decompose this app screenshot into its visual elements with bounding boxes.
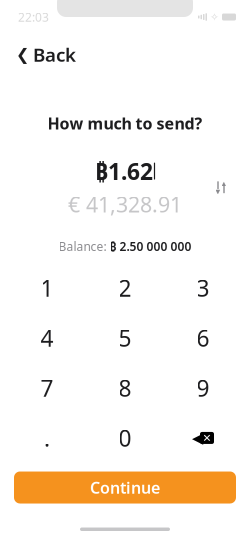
staticText: ❮ — [16, 45, 29, 63]
button[interactable]: 3 — [164, 271, 242, 305]
staticText: 6 — [196, 323, 209, 353]
button[interactable]: ❮ — [0, 34, 92, 75]
staticText: Back — [33, 42, 76, 67]
staticText: How much to send? — [47, 113, 202, 134]
staticText: € 41,328.91 — [68, 190, 182, 218]
staticText: 8 — [118, 373, 131, 403]
staticText: 22:03 — [18, 9, 49, 25]
button[interactable]: 2 — [86, 271, 164, 305]
staticText: ₿1.62 — [95, 156, 153, 186]
button[interactable]: 1 — [8, 271, 86, 305]
staticText: Balance: — [58, 238, 106, 254]
button[interactable]: Switch currency — [206, 172, 236, 202]
staticText: ◀ — [192, 430, 203, 446]
staticText: 7 — [40, 373, 53, 403]
staticText: ₿ 2.50 000 000 — [109, 238, 191, 254]
button[interactable]: 9 — [164, 371, 242, 405]
button[interactable]: 0 — [86, 421, 164, 455]
button[interactable]: 5 — [86, 321, 164, 355]
button[interactable]: 6 — [164, 321, 242, 355]
staticText: ✧ — [210, 11, 219, 23]
staticText: . — [44, 423, 50, 453]
staticText: ✕ — [202, 432, 211, 444]
staticText: ▾ — [215, 186, 220, 197]
staticText: 9 — [196, 373, 209, 403]
staticText: Continue — [90, 477, 160, 498]
button[interactable]: Continue — [14, 471, 236, 503]
staticText: 0 — [118, 423, 131, 453]
staticText: 4 — [40, 323, 53, 353]
button[interactable]: 4 — [8, 321, 86, 355]
staticText: 1 — [40, 273, 53, 303]
button[interactable]: 8 — [86, 371, 164, 405]
button[interactable]: . — [8, 421, 86, 455]
staticText: 2 — [118, 273, 131, 303]
staticText: 3 — [196, 273, 209, 303]
button[interactable]: 7 — [8, 371, 86, 405]
staticText: ▴ — [221, 178, 226, 189]
staticText: 5 — [118, 323, 131, 353]
button[interactable]: Delete — [164, 421, 242, 455]
